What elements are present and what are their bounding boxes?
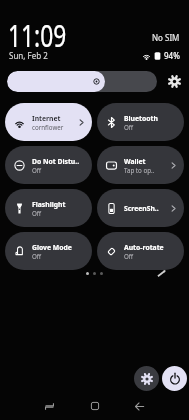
button[interactable] xyxy=(7,71,157,92)
staticText: Bluetooth xyxy=(124,114,158,123)
button[interactable] xyxy=(90,401,100,411)
staticText: No SIM xyxy=(152,32,180,43)
button[interactable] xyxy=(134,401,145,412)
button[interactable]: Auto-rotate xyxy=(97,232,184,270)
button[interactable] xyxy=(134,366,159,391)
button[interactable] xyxy=(44,401,55,412)
button[interactable]: Glove Mode xyxy=(5,232,92,270)
button[interactable]: Do Not Distu.. xyxy=(5,146,92,184)
staticText: Sun, Feb 2 xyxy=(9,50,48,61)
staticText: Auto-rotate xyxy=(124,243,164,252)
staticText: Off xyxy=(32,252,42,260)
staticText: ScreenSh.. xyxy=(124,204,159,213)
staticText: Internet xyxy=(32,114,61,123)
staticText: Off xyxy=(32,209,42,217)
staticText: Off xyxy=(124,252,134,260)
button[interactable]: Internet xyxy=(5,103,92,141)
button[interactable] xyxy=(168,75,181,88)
staticText: Off xyxy=(32,166,42,174)
staticText: Flashlight xyxy=(32,200,66,209)
staticText: Glove Mode xyxy=(32,243,72,252)
staticText: Do Not Distu.. xyxy=(32,157,80,166)
button[interactable]: ScreenSh.. xyxy=(97,189,184,227)
staticText: cornflower xyxy=(32,123,64,131)
button[interactable] xyxy=(157,270,166,277)
staticText: 94% xyxy=(164,50,180,61)
button[interactable] xyxy=(162,366,187,391)
staticText: Tap to op.. xyxy=(124,166,155,174)
button[interactable]: Wallet xyxy=(97,146,184,184)
button[interactable]: Bluetooth xyxy=(97,103,184,141)
button[interactable]: Flashlight xyxy=(5,189,92,227)
staticText: Wallet xyxy=(124,157,146,166)
staticText: Off xyxy=(124,123,134,131)
staticText: 11:09 xyxy=(8,15,66,56)
